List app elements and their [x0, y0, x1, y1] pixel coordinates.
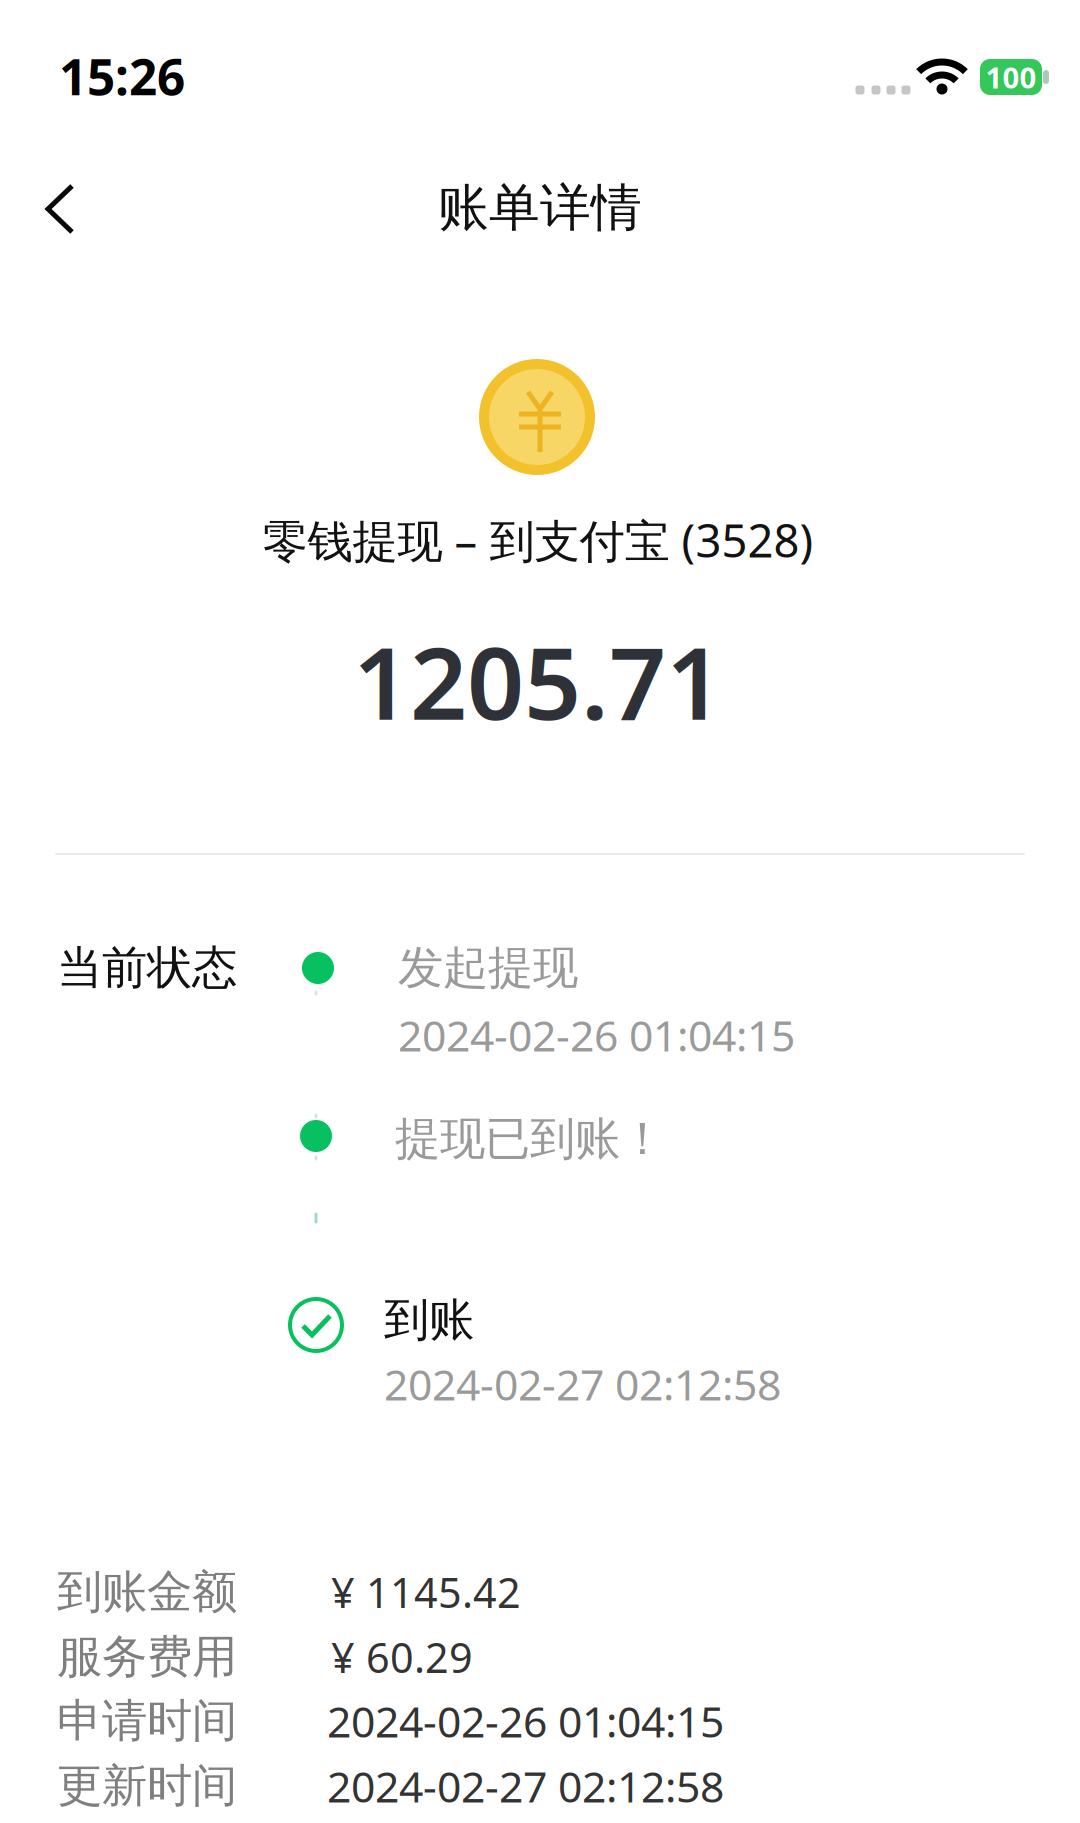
- staticText: 发起提现: [398, 940, 578, 996]
- staticText: 2024-02-27 02:12:58: [384, 1356, 781, 1412]
- staticText: 申请时间: [57, 1693, 237, 1749]
- staticText: 1205.71: [353, 615, 723, 747]
- staticText: 到账金额: [57, 1564, 237, 1620]
- staticText: 服务费用: [57, 1629, 237, 1685]
- staticText: 15:26: [59, 43, 185, 109]
- staticText: 零钱提现 – 到支付宝 (3528): [262, 510, 813, 570]
- staticText: 提现已到账！: [395, 1111, 665, 1167]
- staticText: 2024-02-26 01:04:15: [398, 1007, 795, 1063]
- staticText: 2024-02-26 01:04:15: [327, 1693, 724, 1749]
- staticText: 到账: [384, 1292, 474, 1348]
- staticText: 100: [985, 57, 1036, 96]
- button[interactable]: Back: [28, 177, 92, 241]
- staticText: 2024-02-27 02:12:58: [327, 1758, 724, 1814]
- staticText: 更新时间: [57, 1758, 237, 1814]
- staticText: 当前状态: [57, 940, 237, 996]
- staticText: ¥ 60.29: [331, 1630, 473, 1684]
- staticText: 账单详情: [438, 177, 642, 239]
- staticText: ¥ 1145.42: [331, 1565, 521, 1619]
